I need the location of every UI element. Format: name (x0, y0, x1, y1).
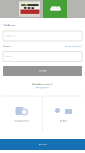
staticText: E-Mail Adresse (3, 24, 15, 26)
button[interactable]: Impressum (0, 139, 85, 150)
staticText: Passwort vergessen? (65, 46, 82, 47)
staticText: Anmelden (38, 70, 46, 72)
button[interactable]: Fahrplanauskunft (1, 100, 41, 128)
staticText: Noch kein Benutzerkonto? (32, 83, 53, 85)
button[interactable]: Passwort vergessen? (56, 44, 82, 48)
button[interactable]: Noch kein Benutzerkonto? (3, 80, 82, 91)
staticText: Impressum (38, 143, 46, 145)
button[interactable]: Anmelden (3, 66, 82, 76)
staticText: Passwort (5, 56, 12, 57)
staticText: Fahrplanauskunft (14, 120, 29, 122)
staticText: E-Mail Adresse (5, 35, 16, 37)
staticText: Passwort (3, 45, 11, 47)
button[interactable]: Nützliches (43, 100, 83, 128)
staticText: hier registrieren (36, 86, 49, 89)
staticText: Nützliches (59, 120, 67, 122)
